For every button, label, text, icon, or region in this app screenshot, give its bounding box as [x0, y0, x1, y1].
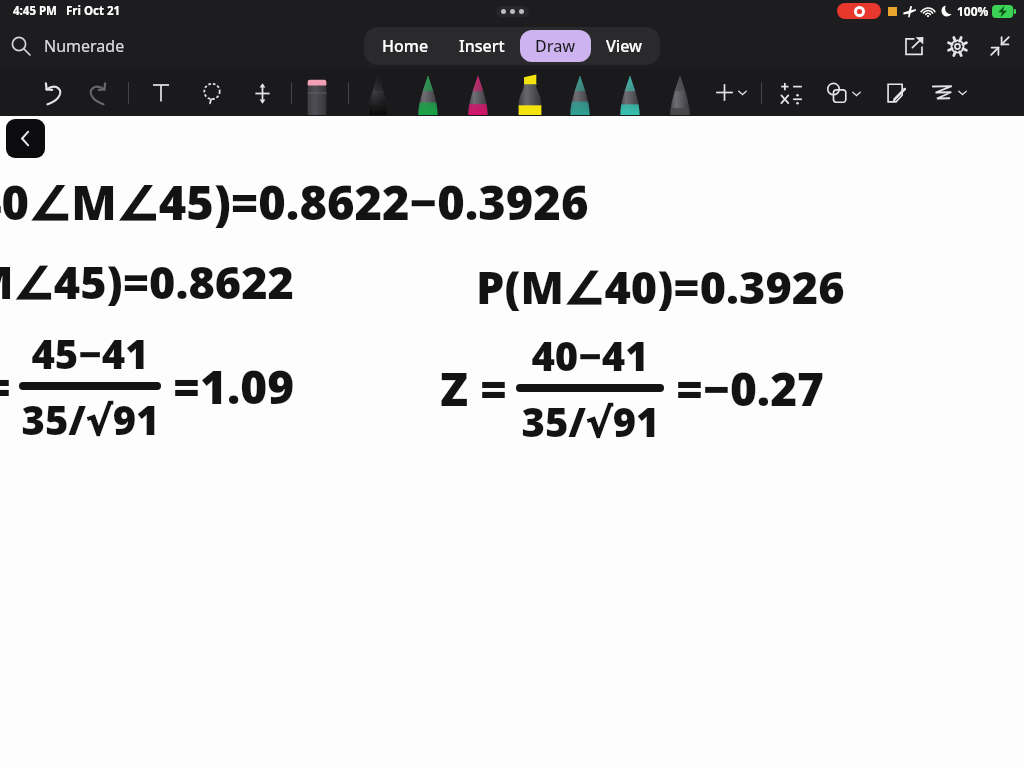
button[interactable]: Collapse [985, 31, 1015, 61]
staticText: Home [382, 35, 429, 57]
staticText: 45−41 [31, 326, 149, 380]
staticText: 40∠M∠45)=0.8622−0.3926 [0, 170, 589, 234]
button[interactable]: Pen [465, 71, 491, 115]
button[interactable]: Undo [38, 78, 68, 108]
staticText: View [606, 35, 642, 57]
staticText: Draw [535, 35, 576, 57]
button[interactable]: Sticky note [881, 78, 911, 108]
staticText: 100% [957, 3, 989, 19]
staticText: Numerade [44, 35, 125, 57]
button[interactable]: Pen [567, 71, 593, 115]
button[interactable]: Text [146, 78, 176, 108]
staticText: Insert [459, 35, 505, 57]
staticText: 35/√91 [21, 392, 160, 446]
button[interactable]: Back [6, 119, 45, 158]
button[interactable]: Pen [415, 71, 441, 115]
button[interactable]: Shapes [824, 77, 863, 109]
button[interactable]: Ink style [929, 76, 969, 109]
staticText: =−0.27 [676, 357, 825, 420]
button[interactable]: Redo [82, 78, 112, 108]
button[interactable]: Highlighter [515, 71, 545, 115]
staticText: 4:45 PM [13, 3, 57, 19]
staticText: M∠45)=0.8622 [0, 251, 294, 312]
button[interactable]: Lasso select [197, 78, 227, 108]
button[interactable]: Home [367, 30, 444, 62]
staticText: = [0, 355, 11, 418]
staticText: Z = [440, 357, 508, 420]
staticText: =1.09 [173, 355, 295, 418]
button[interactable]: Search [0, 29, 139, 63]
button[interactable]: Settings [942, 31, 972, 61]
other: Search [11, 36, 31, 56]
button[interactable]: Pen [667, 71, 693, 115]
button[interactable]: Pen [365, 71, 391, 115]
staticText: Fri Oct 21 [66, 3, 121, 19]
button[interactable]: Pen [617, 71, 643, 115]
button[interactable]: Draw [520, 30, 591, 62]
button[interactable]: View [591, 30, 657, 62]
button[interactable]: Insert [444, 30, 520, 62]
button[interactable]: Math [776, 78, 806, 108]
staticText: 35/√91 [521, 394, 660, 448]
button[interactable]: Insert space [247, 78, 277, 108]
button[interactable]: Share [899, 31, 929, 61]
button[interactable]: Add tool [713, 78, 749, 107]
staticText: 40−41 [531, 328, 649, 382]
staticText: P(M∠40)=0.3926 [476, 256, 845, 317]
button[interactable]: Eraser [304, 71, 330, 115]
